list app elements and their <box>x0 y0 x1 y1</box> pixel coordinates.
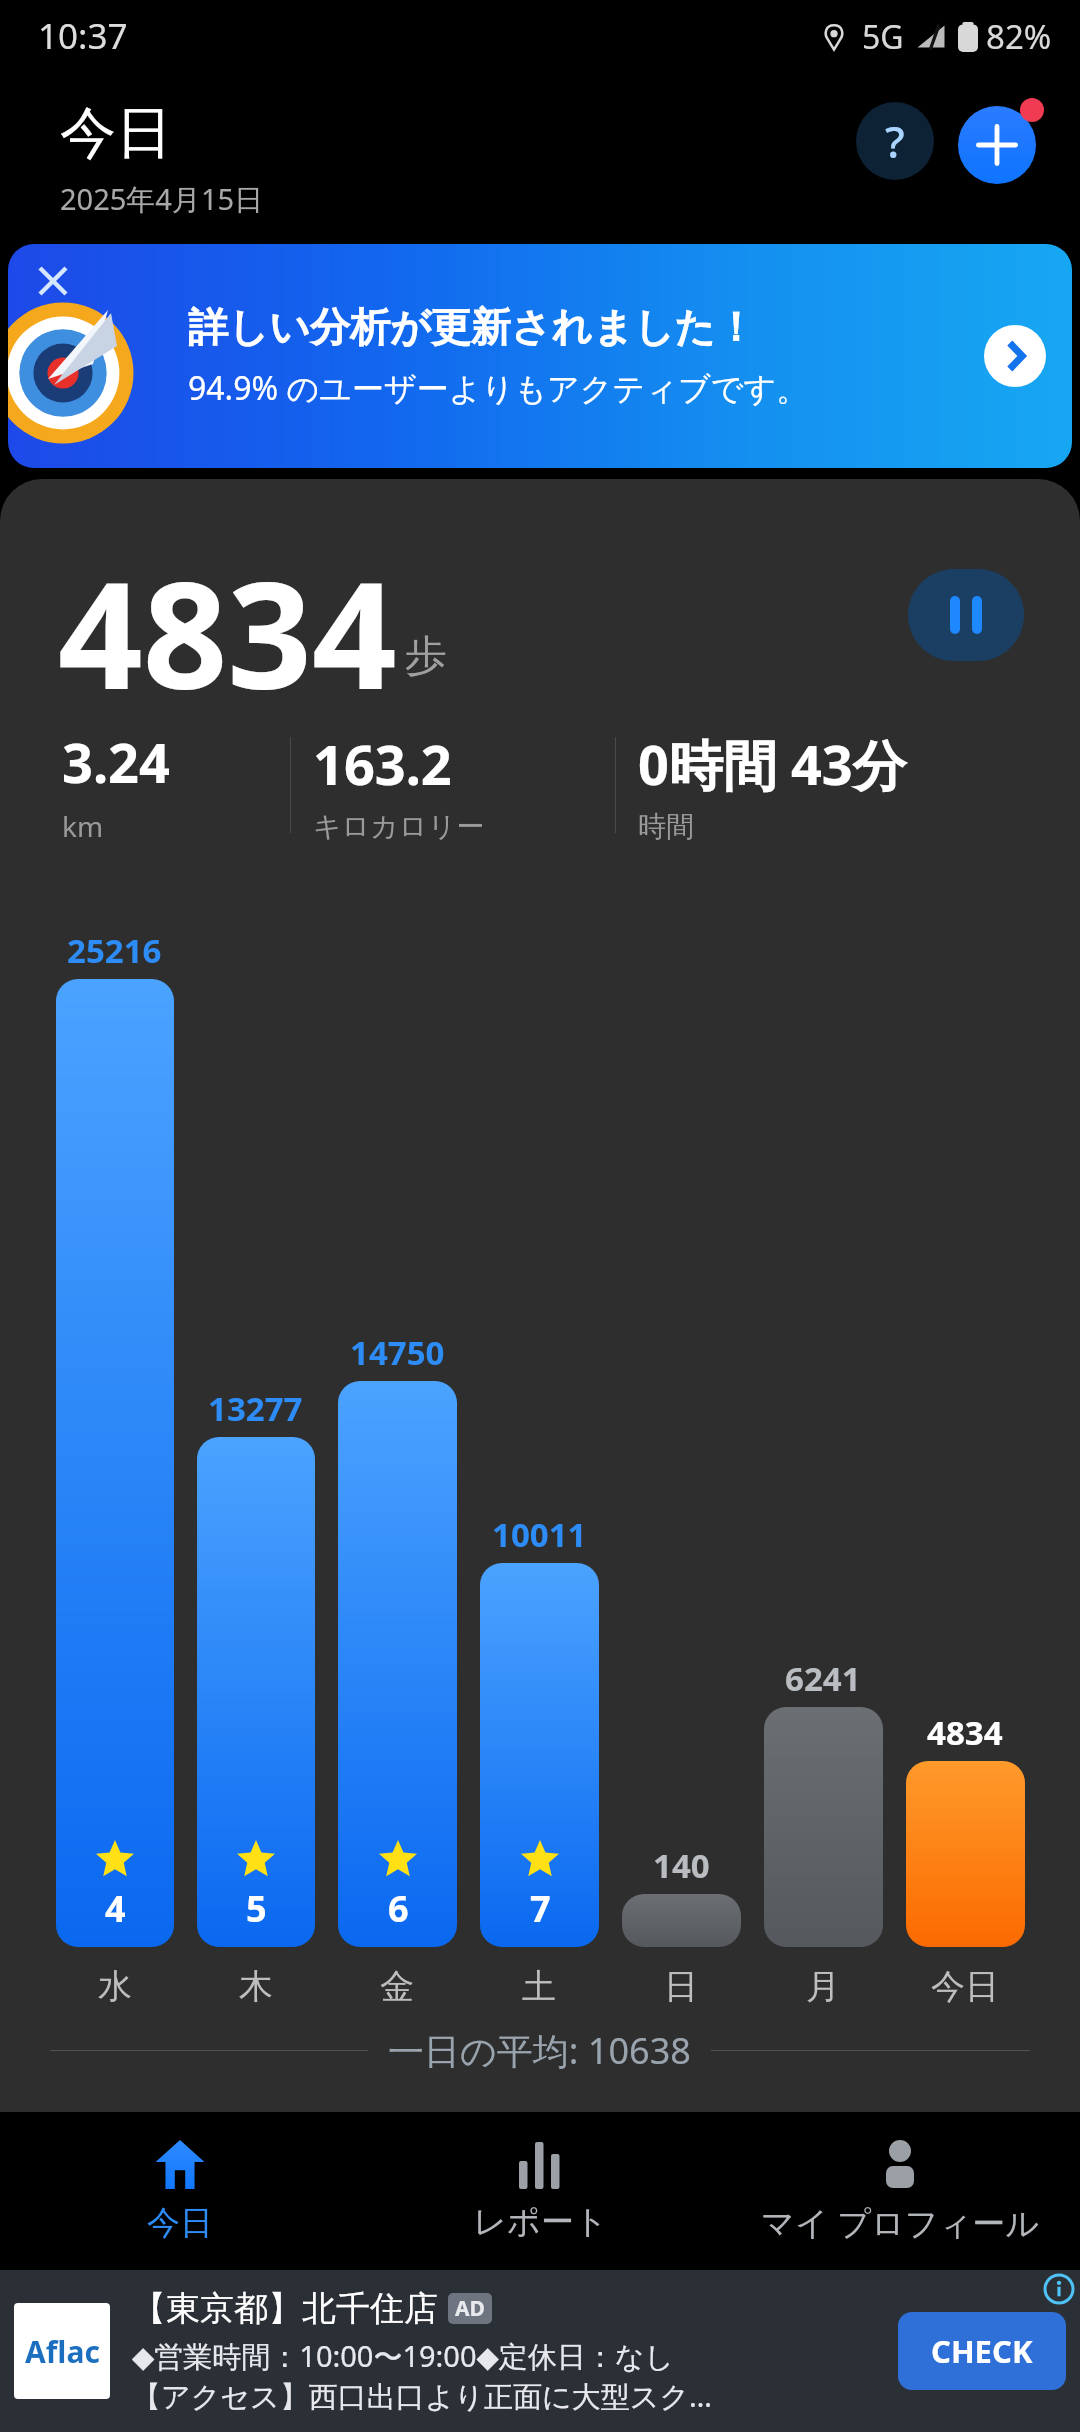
button[interactable]: 閉じる <box>8 244 1072 468</box>
staticText: 4 <box>105 1884 126 1933</box>
button[interactable]: 閉じる <box>30 258 76 304</box>
staticText: 金 <box>380 1965 414 2008</box>
staticText: 140 <box>653 1843 710 1888</box>
staticText: km <box>62 807 104 845</box>
button[interactable]: 一時停止 <box>908 569 1024 661</box>
staticText: 82% <box>986 14 1052 59</box>
button[interactable] <box>906 1761 1025 1947</box>
staticText: キロカロリー <box>313 809 485 844</box>
staticText: 7 <box>530 1884 551 1933</box>
staticText: 3.24 <box>62 725 170 799</box>
button[interactable] <box>622 1894 741 1947</box>
button[interactable]: 6 <box>338 1381 457 1947</box>
staticText: 【アクセス】西口出口より正面に大型スク… <box>132 2376 713 2416</box>
staticText: 10011 <box>492 1512 587 1557</box>
staticText: 25216 <box>67 928 162 973</box>
staticText: 6241 <box>785 1656 861 1701</box>
staticText: 一日の平均: 10638 <box>388 2026 691 2075</box>
staticText: 10:37 <box>38 12 128 60</box>
staticText: 今日 <box>147 2202 213 2244</box>
button[interactable]: 追加 <box>958 106 1036 184</box>
staticText: ◆営業時間：10:00〜19:00◆定休日：なし <box>132 2336 675 2376</box>
staticText: 詳しい分析が更新されました！ <box>188 302 756 352</box>
staticText: ? <box>885 111 905 171</box>
staticText: 2025年4月15日 <box>60 179 264 219</box>
staticText: 4834 <box>58 531 397 699</box>
staticText: 土 <box>522 1965 556 2008</box>
staticText: 日 <box>664 1965 698 2008</box>
staticText: 163.2 <box>313 727 452 801</box>
staticText: 13277 <box>208 1386 303 1431</box>
button[interactable]: 広告情報 <box>1042 2272 1076 2306</box>
button[interactable]: 詳細を見る <box>984 325 1046 387</box>
staticText: 4834 <box>927 1710 1003 1755</box>
staticText: CHECK <box>931 2330 1033 2372</box>
staticText: 今日 <box>931 1965 999 2008</box>
staticText: 14750 <box>350 1330 445 1375</box>
staticText: 時間 <box>638 809 694 844</box>
staticText: Aflac <box>25 2331 100 2372</box>
button[interactable]: 4 <box>56 979 174 1947</box>
staticText: 木 <box>239 1965 273 2008</box>
button[interactable]: 5 <box>197 1437 315 1947</box>
staticText: 5 <box>246 1884 267 1933</box>
staticText: 0時間 43分 <box>638 727 907 801</box>
button[interactable]: 7 <box>480 1563 599 1947</box>
button[interactable]: マイ プロフィール <box>720 2112 1080 2270</box>
staticText: 【東京都】北千住店 <box>132 2287 438 2330</box>
button[interactable]: 今日 <box>0 2112 360 2270</box>
staticText: レポート <box>473 2201 608 2243</box>
staticText: 5G <box>862 15 904 59</box>
button[interactable]: CHECK <box>898 2312 1066 2390</box>
button[interactable] <box>764 1707 883 1947</box>
staticText: 歩 <box>405 630 447 683</box>
staticText: 6 <box>388 1884 409 1933</box>
button[interactable]: ヘルプ <box>856 102 934 180</box>
button[interactable]: Aflac <box>0 2270 1080 2432</box>
staticText: 94.9% のユーザーよりもアクティブです。 <box>188 366 809 410</box>
staticText: マイ プロフィール <box>761 2200 1039 2245</box>
button[interactable]: レポート <box>360 2112 720 2270</box>
staticText: 水 <box>98 1965 132 2008</box>
staticText: 今日 <box>60 98 172 169</box>
staticText: AD <box>455 2294 485 2323</box>
staticText: 月 <box>806 1965 840 2008</box>
